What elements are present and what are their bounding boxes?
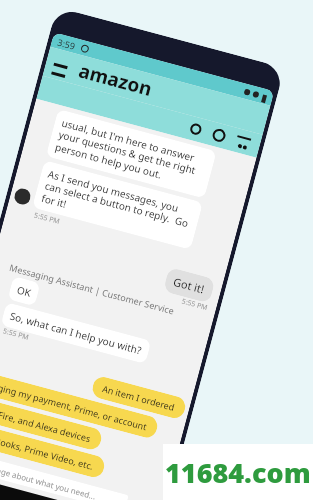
staticText: As I send you messages, you can select a…	[40, 167, 195, 243]
staticText: 3:59	[56, 36, 77, 52]
staticText: 11684.com	[165, 454, 311, 491]
button[interactable]: Kindle, Fire, and Alexa devices	[0, 392, 104, 452]
staticText: So, what can I help you with?	[8, 309, 143, 357]
button[interactable]: Account	[204, 121, 234, 150]
staticText: OK	[15, 283, 33, 300]
staticText: usual, but I'm here to answer your quest…	[54, 115, 209, 192]
staticText: Got it!	[172, 274, 207, 297]
button[interactable]: Cart	[227, 127, 259, 157]
button[interactable]: Search	[181, 114, 210, 144]
staticText: Kindle, Fire, and Alexa devices	[0, 400, 93, 444]
button[interactable]: Music, eBooks, Prime Video, etc.	[0, 418, 107, 479]
staticText: 5:55 PM	[180, 296, 209, 313]
staticText: Messaging Assistant | Customer Service	[8, 261, 176, 316]
staticText: Music, eBooks, Prime Video, etc.	[0, 425, 96, 472]
button[interactable]: An item I ordered	[90, 375, 188, 420]
button[interactable]: Managing my payment, Prime, or account	[0, 367, 160, 440]
staticText: An item I ordered	[101, 382, 177, 413]
staticText: amazon	[76, 57, 155, 102]
staticText: Type a message about what you need...	[0, 452, 98, 500]
staticText: 5:55 PM	[33, 210, 61, 227]
staticText: Managing my payment, Prime, or account	[0, 375, 149, 432]
staticText: 5:55 PM	[2, 326, 30, 343]
